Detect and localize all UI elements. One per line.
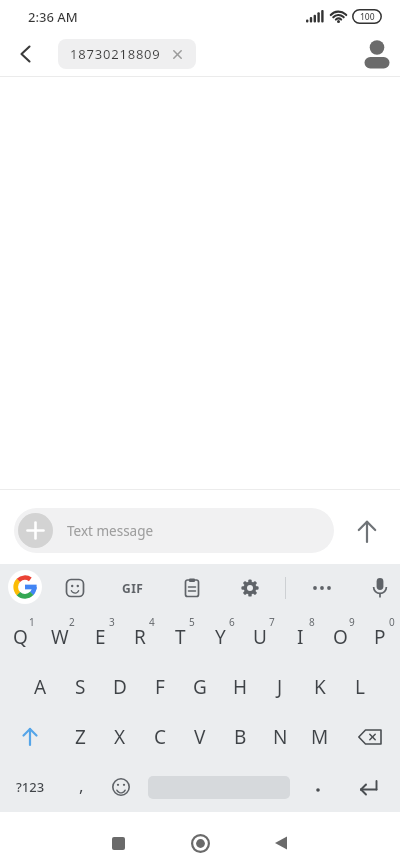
button[interactable]: L [340, 662, 380, 712]
staticText: 2:36 AM [28, 8, 78, 26]
button[interactable]: F [140, 662, 180, 712]
staticText: K [314, 674, 326, 700]
button[interactable]: Text message [14, 508, 334, 553]
button[interactable] [0, 712, 60, 762]
button[interactable]: H [220, 662, 260, 712]
button[interactable]: O [320, 612, 360, 662]
staticText: I [297, 624, 304, 650]
button[interactable]: G [180, 662, 220, 712]
button[interactable]: Y [200, 612, 240, 662]
staticText: H [233, 674, 248, 700]
staticText: P [374, 624, 386, 650]
button[interactable] [100, 828, 136, 858]
staticText: S [75, 674, 86, 700]
staticText: 9 [349, 615, 355, 629]
button[interactable]: A [20, 662, 60, 712]
button[interactable]: M [300, 712, 340, 762]
staticText: R [134, 624, 146, 650]
button[interactable]: , [60, 762, 102, 812]
button[interactable]: W [40, 612, 80, 662]
button[interactable] [175, 571, 209, 605]
staticText: 4 [149, 615, 155, 629]
button[interactable] [8, 36, 44, 72]
staticText: 2 [69, 615, 75, 629]
staticText: F [155, 674, 165, 700]
button[interactable] [348, 513, 386, 551]
button[interactable] [148, 762, 290, 812]
button[interactable]: Q [0, 612, 40, 662]
button[interactable] [8, 570, 42, 604]
staticText: Y [215, 624, 226, 650]
staticText: B [234, 724, 247, 750]
staticText: U [253, 624, 267, 650]
button[interactable] [102, 762, 140, 812]
button[interactable]: N [260, 712, 300, 762]
button[interactable] [233, 571, 267, 605]
staticText: Q [13, 624, 28, 650]
staticText: ?123 [16, 778, 45, 796]
staticText: O [333, 624, 348, 650]
button[interactable]: GIF [116, 571, 150, 605]
staticText: X [114, 724, 126, 750]
staticText: L [355, 674, 365, 700]
button[interactable] [359, 36, 395, 72]
staticText: M [311, 724, 329, 750]
button[interactable] [58, 571, 92, 605]
staticText: G [193, 674, 207, 700]
staticText: , [79, 774, 84, 797]
button[interactable] [298, 762, 338, 812]
button[interactable]: V [180, 712, 220, 762]
button[interactable]: T [160, 612, 200, 662]
staticText: 1 [29, 615, 35, 629]
button[interactable]: C [140, 712, 180, 762]
staticText: 6 [229, 615, 235, 629]
staticText: 3 [109, 615, 115, 629]
staticText: T [175, 624, 186, 650]
button[interactable] [363, 571, 397, 605]
button[interactable] [338, 762, 400, 812]
button[interactable]: P [360, 612, 400, 662]
staticText: J [277, 674, 283, 700]
button[interactable]: J [260, 662, 300, 712]
button[interactable]: U [240, 612, 280, 662]
staticText: 18730218809 [70, 45, 161, 63]
staticText: Z [75, 724, 86, 750]
button[interactable]: ?123 [0, 762, 60, 812]
button[interactable]: K [300, 662, 340, 712]
staticText: 0 [389, 615, 395, 629]
staticText: GIF [122, 580, 144, 596]
button[interactable]: 18730218809 [58, 39, 196, 69]
staticText: D [113, 674, 127, 700]
staticText: W [51, 624, 69, 650]
staticText: N [273, 724, 288, 750]
button[interactable] [182, 828, 218, 858]
button[interactable] [340, 712, 400, 762]
button[interactable] [305, 571, 339, 605]
button[interactable] [18, 513, 53, 548]
button[interactable]: X [100, 712, 140, 762]
staticText: V [194, 724, 206, 750]
button[interactable] [263, 828, 299, 858]
button[interactable]: B [220, 712, 260, 762]
button[interactable]: S [60, 662, 100, 712]
staticText: 100 [360, 11, 375, 23]
staticText: 5 [189, 615, 195, 629]
staticText: 8 [309, 615, 315, 629]
staticText: E [95, 624, 106, 650]
staticText: A [34, 674, 47, 700]
button[interactable]: R [120, 612, 160, 662]
button[interactable]: E [80, 612, 120, 662]
button[interactable]: Z [60, 712, 100, 762]
button[interactable]: D [100, 662, 140, 712]
staticText: Text message [67, 522, 154, 540]
button[interactable]: I [280, 612, 320, 662]
staticText: C [154, 724, 167, 750]
staticText: 7 [269, 615, 275, 629]
